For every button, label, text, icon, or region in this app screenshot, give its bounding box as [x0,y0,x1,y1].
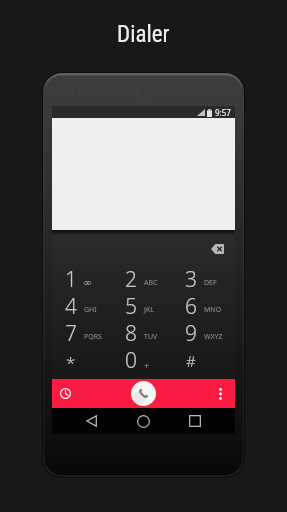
button[interactable]: 8 [114,319,174,346]
staticText: Dialer [117,21,170,48]
staticText: 0 [125,346,137,373]
button[interactable]: 2 [114,265,174,292]
button[interactable]: # [174,346,234,373]
staticText: 8 [125,319,137,346]
staticText: 2 [125,265,137,292]
button[interactable]: 7 [54,319,114,346]
staticText: 3 [185,265,197,292]
staticText: 4 [65,292,77,319]
button[interactable]: 1 [54,265,114,292]
button[interactable]: Call history [55,383,76,404]
button[interactable]: 9 [174,319,234,346]
button[interactable]: Call [131,381,156,406]
button[interactable]: More options [210,384,230,404]
staticText: WXYZ [204,332,223,342]
button[interactable]: Recents [169,408,221,434]
button[interactable]: Backspace [205,237,229,261]
staticText: 1 [65,265,77,292]
button[interactable]: Home [117,408,169,434]
staticText: # [186,351,196,371]
staticText: ABC [144,278,158,288]
staticText: PQRS [84,332,102,342]
button[interactable]: 6 [174,292,234,319]
staticText: 7 [65,319,77,346]
button[interactable]: * [54,346,114,373]
staticText: + [144,359,150,371]
staticText: TUV [144,332,158,342]
button[interactable]: 5 [114,292,174,319]
staticText: JKL [144,305,154,315]
staticText: * [66,351,76,374]
button[interactable]: Back [66,408,117,434]
staticText: MNO [204,305,222,315]
staticText: 9:57 [215,107,231,118]
staticText: 6 [185,292,197,319]
button[interactable]: 3 [174,265,234,292]
button[interactable]: 4 [54,292,114,319]
staticText: 5 [125,292,137,319]
staticText: DEF [204,278,217,288]
staticText: 9 [185,319,197,346]
button[interactable]: 0 [114,346,174,373]
staticText: GHI [84,305,97,315]
